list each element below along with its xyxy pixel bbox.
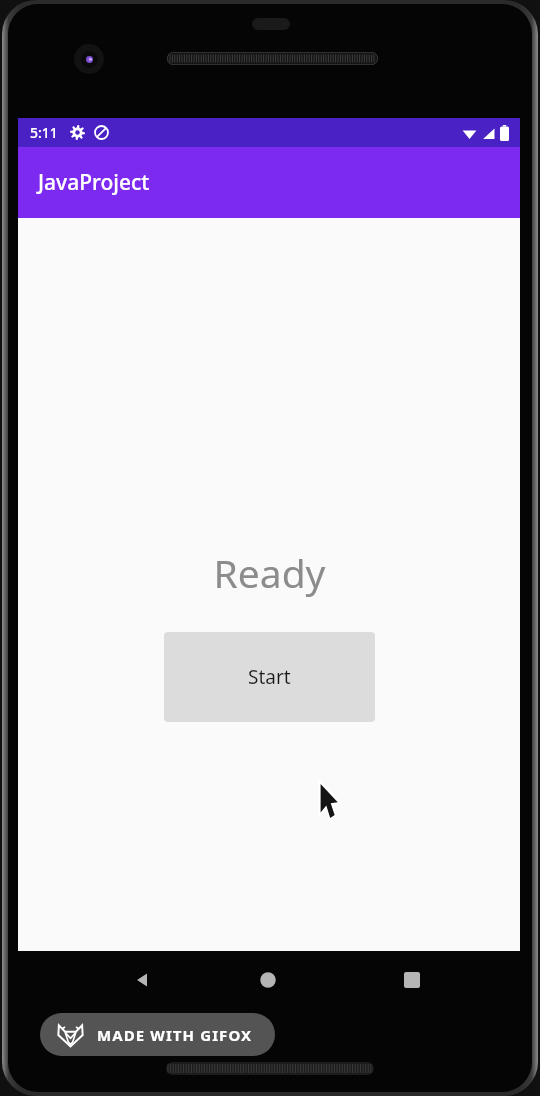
staticText: JavaProject (38, 168, 150, 197)
staticText: 5:11 (30, 123, 58, 142)
staticText: Ready (213, 546, 326, 599)
staticText: Start (248, 664, 291, 690)
staticText: MADE WITH GIFOX (97, 1025, 253, 1045)
button[interactable]: Back (101, 951, 185, 1009)
button[interactable]: Recent apps (370, 951, 454, 1009)
button[interactable]: Home (226, 951, 310, 1009)
button[interactable]: Start (164, 632, 375, 722)
